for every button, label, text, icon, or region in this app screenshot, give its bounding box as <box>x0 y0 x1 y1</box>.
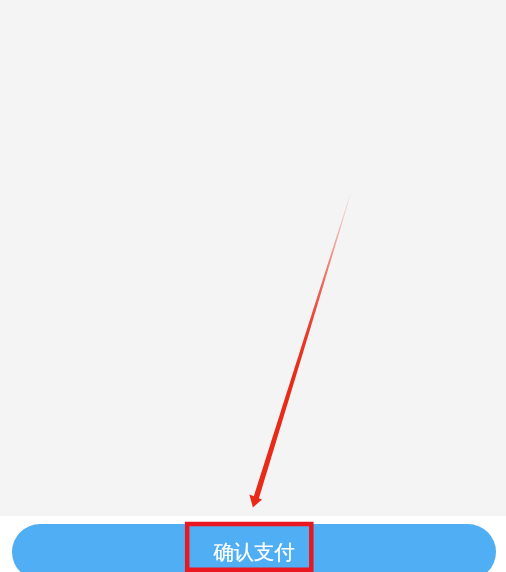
staticText: 确认支付 <box>213 539 295 565</box>
button[interactable]: 确认支付 <box>12 524 496 572</box>
